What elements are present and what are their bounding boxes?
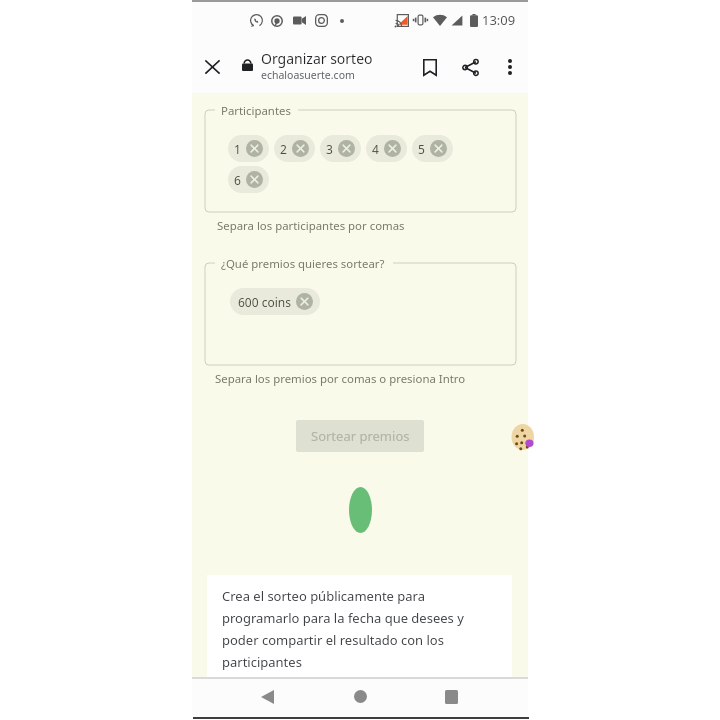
button[interactable]: 4 xyxy=(366,135,407,162)
staticText: ¿Qué premios quieres sortear? xyxy=(221,256,385,272)
staticText: 13:09 xyxy=(482,11,516,29)
staticText: Separa los participantes por comas xyxy=(217,218,405,234)
button[interactable]: Home xyxy=(340,683,380,710)
staticText: Sortear premios xyxy=(311,427,410,445)
button[interactable]: Close xyxy=(193,48,231,86)
button[interactable]: Back xyxy=(247,683,287,710)
staticText: 6 xyxy=(234,172,241,188)
staticText: Separa los premios por comas o presiona … xyxy=(215,371,466,387)
button[interactable]: 600 coins xyxy=(230,288,320,315)
staticText: 600 coins xyxy=(238,294,291,310)
staticText: Organizar sorteo xyxy=(261,49,373,68)
button[interactable]: Share xyxy=(450,47,490,87)
staticText: 3 xyxy=(326,141,333,157)
staticText: 4 xyxy=(372,141,379,157)
staticText: 1 xyxy=(234,141,241,157)
button[interactable]: Cookie settings xyxy=(513,424,528,450)
button[interactable]: 3 xyxy=(320,135,361,162)
button[interactable]: 5 xyxy=(412,135,453,162)
staticText: echaloasuerte.com xyxy=(261,68,355,82)
button[interactable]: Bookmark xyxy=(410,47,450,87)
staticText: Crea el sorteo públicamente para program… xyxy=(222,587,464,671)
staticText: 5 xyxy=(418,141,425,157)
button[interactable]: Recents xyxy=(431,683,471,710)
button[interactable]: More options xyxy=(490,47,530,87)
staticText: 2 xyxy=(280,141,287,157)
staticText: Participantes xyxy=(221,103,291,119)
button[interactable]: 2 xyxy=(274,135,315,162)
button[interactable]: 6 xyxy=(228,166,269,193)
button[interactable]: Sortear premios xyxy=(296,420,424,452)
button[interactable]: 1 xyxy=(228,135,269,162)
